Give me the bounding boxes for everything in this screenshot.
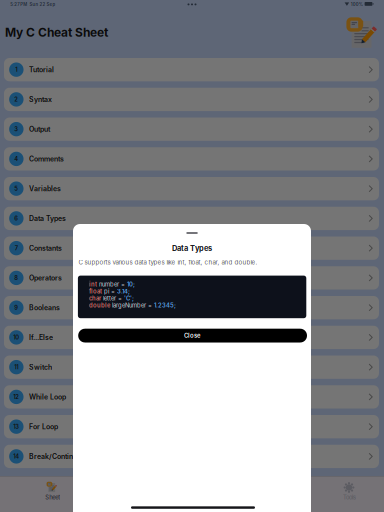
staticText: char xyxy=(89,295,101,302)
staticText: int xyxy=(89,281,97,288)
staticText: 8 xyxy=(14,274,18,281)
staticText: Constants xyxy=(29,244,62,252)
staticText: Booleans xyxy=(29,303,60,312)
staticText: For Loop xyxy=(29,422,58,431)
staticText: 5:27 PM xyxy=(10,2,27,7)
staticText: 11 xyxy=(14,364,18,371)
staticText: C supports various data types like int, … xyxy=(78,259,257,266)
button[interactable]: App logo xyxy=(346,17,377,48)
staticText: 3 xyxy=(14,126,18,133)
staticText: 100% xyxy=(351,2,363,7)
staticText: float xyxy=(89,288,102,295)
staticText: 7 xyxy=(15,245,18,252)
staticText: 12 xyxy=(13,393,19,400)
staticText: 6 xyxy=(14,215,18,222)
button[interactable]: 14 xyxy=(4,445,379,468)
staticText: number = xyxy=(97,281,127,288)
staticText: Close xyxy=(184,332,201,339)
staticText: Data Types xyxy=(29,214,66,223)
staticText: Switch xyxy=(29,363,52,371)
staticText: 1.2345; xyxy=(154,302,176,309)
button[interactable]: 9 xyxy=(4,296,379,319)
button[interactable]: 1 xyxy=(4,58,379,81)
button[interactable]: 7 xyxy=(4,236,379,260)
staticText: 2 xyxy=(14,96,18,103)
staticText: double xyxy=(89,302,110,309)
button[interactable]: 6 xyxy=(4,207,379,230)
staticText: letter = xyxy=(101,295,124,302)
staticText: 10 xyxy=(13,334,19,341)
button[interactable]: Tools xyxy=(327,481,371,507)
staticText: 10; xyxy=(127,281,135,288)
button[interactable]: 8 xyxy=(4,266,379,289)
staticText: 4 xyxy=(14,155,18,162)
staticText: Comments xyxy=(29,155,64,163)
staticText: 'C'; xyxy=(124,295,134,302)
staticText: 9 xyxy=(14,304,18,311)
staticText: 3.14; xyxy=(117,288,130,295)
staticText: If...Else xyxy=(29,333,53,342)
button[interactable]: 4 xyxy=(4,147,379,170)
staticText: Variables xyxy=(29,184,61,193)
staticText: largeNumber = xyxy=(110,302,154,309)
staticText: 14 xyxy=(13,453,19,460)
button[interactable]: 11 xyxy=(4,355,379,379)
staticText: My C Cheat Sheet xyxy=(5,25,108,39)
staticText: 5 xyxy=(14,185,18,192)
staticText: Break/Continue xyxy=(29,452,81,461)
button[interactable]: Sheet xyxy=(31,481,75,507)
staticText: Data Types xyxy=(172,244,212,253)
staticText: 1 xyxy=(15,66,17,73)
staticText: Output xyxy=(29,125,50,133)
staticText: Tools xyxy=(343,494,356,501)
staticText: Sheet xyxy=(45,494,60,501)
button[interactable]: 3 xyxy=(4,117,379,141)
staticText: Tutorial xyxy=(29,65,54,74)
staticText: Operators xyxy=(29,274,62,282)
staticText: Syntax xyxy=(29,95,52,104)
button[interactable]: 10 xyxy=(4,326,379,349)
button[interactable]: 13 xyxy=(4,415,379,438)
staticText: While Loop xyxy=(29,393,66,401)
button[interactable]: 2 xyxy=(4,88,379,111)
staticText: Sun 22 Sep xyxy=(29,2,55,7)
staticText: pi = xyxy=(102,288,117,295)
button[interactable]: 5 xyxy=(4,177,379,200)
staticText: 13 xyxy=(13,423,19,430)
button[interactable]: Close xyxy=(78,329,307,342)
button[interactable]: 12 xyxy=(4,385,379,408)
